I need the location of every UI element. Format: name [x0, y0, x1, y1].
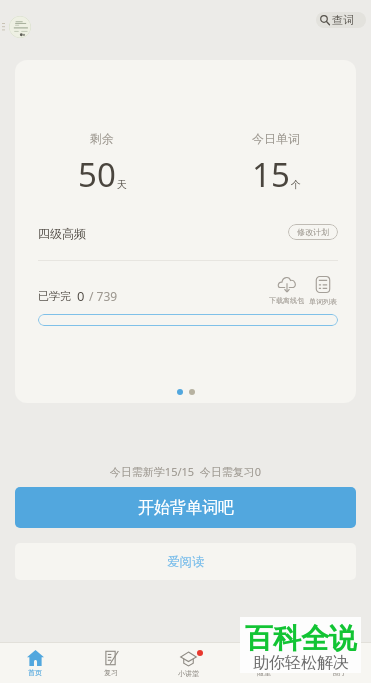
- staticText: / 739: [89, 288, 118, 304]
- staticText: 今日需新学15/15 今日需复习0: [0, 464, 371, 479]
- staticText: 首页: [28, 668, 42, 677]
- button[interactable]: 下载离线包: [269, 276, 304, 305]
- staticText: 修改计划: [297, 227, 329, 237]
- staticText: 已学完: [38, 289, 71, 303]
- staticText: 百科全说: [245, 621, 357, 656]
- staticText: 随堂: [257, 668, 271, 677]
- button[interactable]: Profile: [9, 16, 31, 38]
- button[interactable]: 爱阅读: [15, 543, 356, 580]
- staticText: 15: [252, 152, 290, 197]
- staticText: 下载离线包: [269, 296, 304, 305]
- staticText: 圈子: [333, 668, 347, 677]
- staticText: 爱阅读: [167, 554, 205, 570]
- staticText: 50: [78, 152, 116, 197]
- staticText: 天: [117, 178, 127, 191]
- staticText: 查词: [332, 13, 354, 27]
- staticText: 今日单词: [252, 131, 300, 146]
- staticText: 剩余: [90, 131, 114, 146]
- button[interactable]: 复习: [81, 644, 141, 682]
- staticText: 单词列表: [309, 297, 337, 306]
- button[interactable]: 查词: [316, 12, 366, 28]
- staticText: 四级高频: [38, 226, 86, 241]
- button[interactable]: 随堂: [234, 644, 294, 682]
- button[interactable]: 开始背单词吧: [15, 487, 356, 528]
- button[interactable]: 修改计划: [288, 224, 338, 240]
- button[interactable]: 单词列表: [309, 276, 337, 306]
- button[interactable]: 圈子: [310, 644, 370, 682]
- staticText: 复习: [104, 668, 118, 677]
- staticText: 开始背单词吧: [138, 498, 234, 518]
- staticText: 助你轻松解决: [253, 653, 349, 670]
- button[interactable]: 小讲堂: [158, 644, 218, 682]
- button[interactable]: 首页: [5, 644, 65, 682]
- staticText: 0: [77, 287, 85, 305]
- staticText: 个: [291, 178, 301, 191]
- staticText: 小讲堂: [178, 669, 199, 678]
